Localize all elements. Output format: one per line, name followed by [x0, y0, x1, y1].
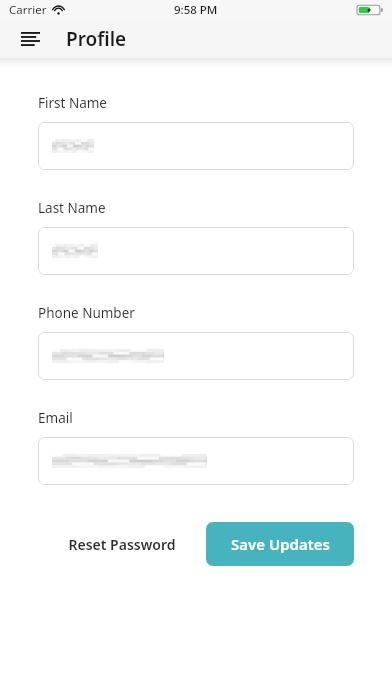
- staticText: Reset Password: [68, 535, 176, 554]
- button[interactable]: Reset Password: [38, 522, 206, 566]
- button[interactable]: [38, 227, 354, 275]
- button[interactable]: Open navigation menu: [10, 20, 50, 58]
- button[interactable]: [38, 332, 354, 380]
- staticText: Phone Number: [38, 304, 135, 322]
- staticText: Last Name: [38, 199, 106, 217]
- button[interactable]: [38, 122, 354, 170]
- staticText: Save Updates: [231, 534, 330, 554]
- button[interactable]: [38, 437, 354, 485]
- staticText: Carrier: [9, 2, 47, 18]
- staticText: Profile: [66, 26, 127, 52]
- staticText: First Name: [38, 94, 107, 112]
- button[interactable]: Save Updates: [206, 522, 354, 566]
- staticText: Email: [38, 409, 73, 427]
- staticText: 9:58 PM: [174, 2, 218, 18]
